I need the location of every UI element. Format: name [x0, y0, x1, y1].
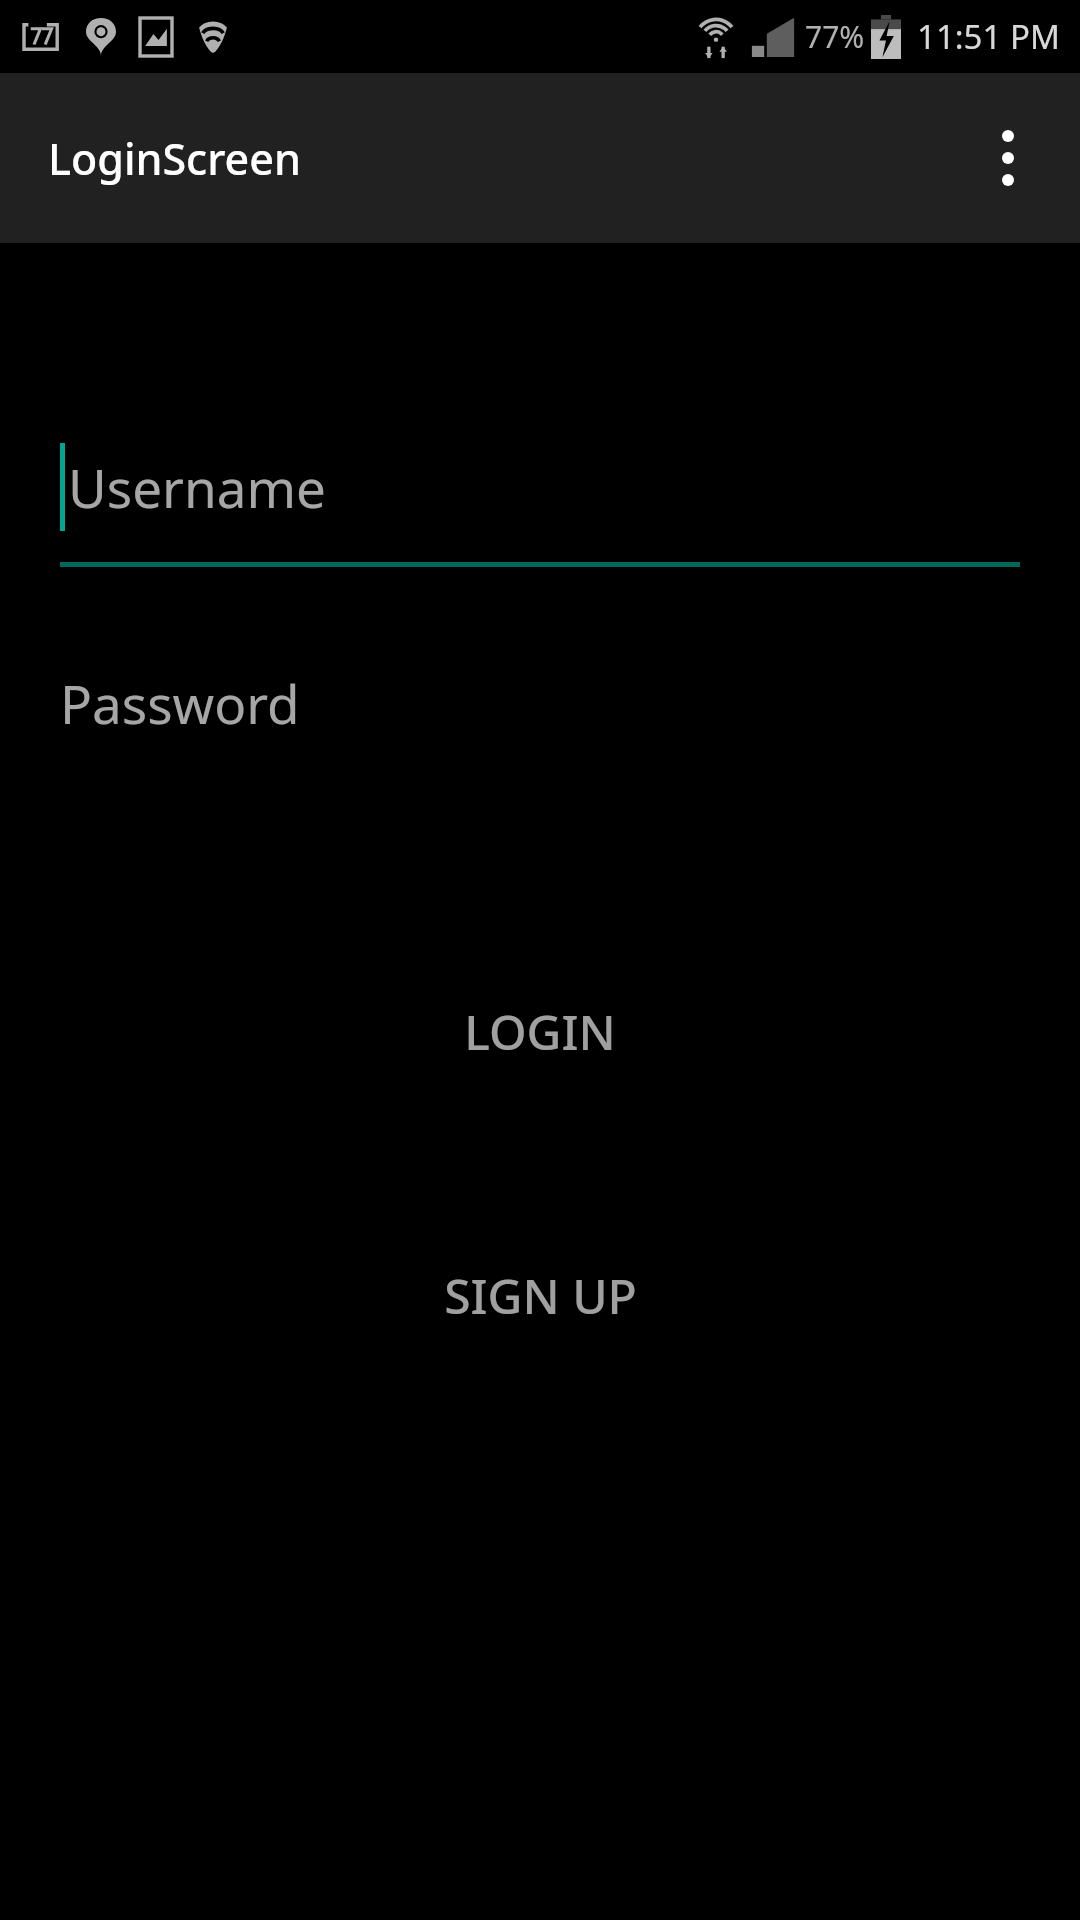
staticText: 77%	[805, 16, 865, 57]
staticText: 11:51 PM	[917, 14, 1060, 59]
staticText: LoginScreen	[48, 129, 301, 188]
button[interactable]: LOGIN	[60, 969, 1020, 1093]
staticText: Username	[68, 451, 326, 523]
button[interactable]: SIGN UP	[60, 1233, 1020, 1357]
staticText: LOGIN	[464, 999, 616, 1064]
staticText: SIGN UP	[444, 1263, 637, 1328]
button[interactable]: Username	[60, 407, 1020, 567]
staticText: Password	[60, 667, 300, 739]
button[interactable]: More options	[960, 110, 1056, 206]
button[interactable]: Password	[60, 633, 1020, 773]
